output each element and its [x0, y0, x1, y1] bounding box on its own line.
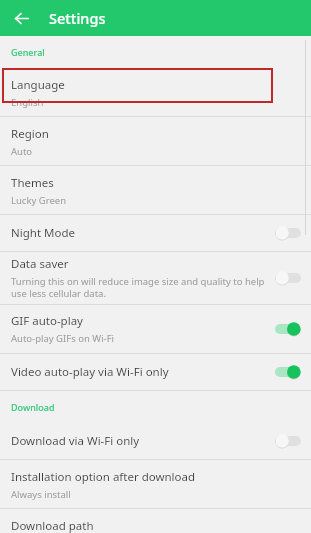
button[interactable]: Installation option after download [0, 460, 311, 508]
staticText: Download via Wi-Fi only [11, 433, 140, 449]
staticText: General [11, 46, 45, 58]
button[interactable]: Themes [0, 166, 311, 214]
button[interactable]: Download via Wi-Fi only [0, 423, 311, 459]
staticText: Night Mode [11, 225, 75, 241]
button[interactable]: Data saver [0, 252, 311, 304]
staticText: English [11, 96, 44, 109]
staticText: Settings [49, 8, 106, 28]
staticText: Turning this on will reduce image size a… [11, 275, 275, 300]
button[interactable]: Language [0, 68, 311, 116]
staticText: Always install [11, 488, 71, 501]
button[interactable]: Night Mode [0, 215, 311, 251]
button[interactable]: Back [7, 4, 35, 32]
button[interactable]: Region [0, 117, 311, 165]
staticText: Auto-play GIFs on Wi-Fi [11, 332, 115, 345]
staticText: Region [11, 126, 49, 142]
staticText: GIF auto-play [11, 313, 83, 329]
staticText: Installation option after download [11, 469, 196, 485]
staticText: Lucky Green [11, 194, 67, 207]
staticText: Download path [11, 518, 94, 533]
button[interactable]: Download path [0, 509, 311, 533]
staticText: Video auto-play via Wi-Fi only [11, 364, 169, 380]
button[interactable]: GIF auto-play [0, 305, 311, 353]
staticText: Language [11, 77, 65, 93]
button[interactable]: Video auto-play via Wi-Fi only [0, 354, 311, 390]
staticText: Download [11, 401, 55, 413]
staticText: Auto [11, 145, 33, 158]
staticText: Themes [11, 175, 54, 191]
staticText: Data saver [11, 256, 69, 272]
